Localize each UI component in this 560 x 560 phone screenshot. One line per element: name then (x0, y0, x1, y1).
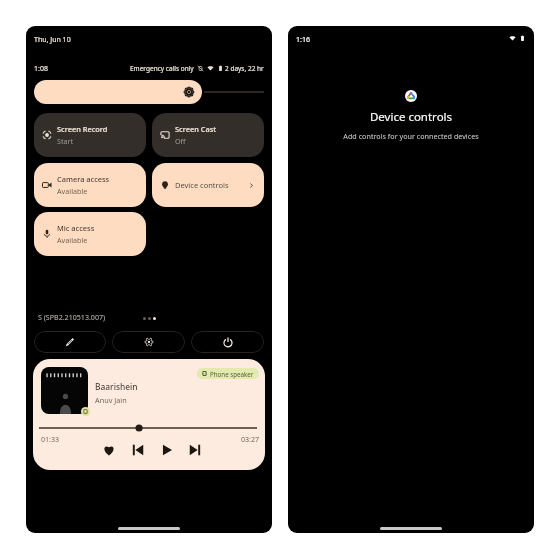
button[interactable]: Phone speaker (197, 368, 259, 379)
staticText: Screen Record (57, 124, 108, 134)
staticText: Phone speaker (210, 370, 254, 378)
staticText: 01:33 (41, 434, 60, 444)
button[interactable]: Settings (112, 331, 185, 353)
button[interactable]: Screen Cast (152, 113, 264, 157)
button[interactable]: Edit (34, 331, 106, 353)
button[interactable]: Next (187, 442, 203, 458)
button[interactable]: Power (191, 331, 264, 353)
button[interactable]: Device controls (152, 163, 264, 207)
button[interactable]: Mic access (34, 212, 146, 256)
staticText: Add controls for your connected devices (288, 131, 534, 141)
staticText: 03:27 (241, 434, 260, 444)
staticText: Off (175, 136, 186, 146)
staticText: Start (57, 136, 74, 146)
staticText: Device controls (175, 180, 229, 190)
staticText: 2 days, 22 hr (225, 64, 264, 73)
staticText: 1:16 (296, 35, 310, 45)
button[interactable]: Previous (130, 442, 146, 458)
staticText: Emergency calls only (130, 64, 194, 73)
staticText: Available (57, 235, 88, 245)
staticText: Mic access (57, 223, 95, 233)
button[interactable]: Favorite (101, 442, 117, 458)
button[interactable]: Play (159, 442, 175, 458)
button[interactable] (34, 80, 202, 104)
staticText: Baarishein (95, 381, 138, 392)
staticText: Device controls (288, 109, 534, 125)
button[interactable]: Screen Record (34, 113, 146, 157)
staticText: Anuv Jain (95, 395, 127, 405)
staticText: 1:08 (34, 64, 48, 74)
staticText: Available (57, 186, 88, 196)
staticText: Camera access (57, 174, 110, 184)
staticText: Thu, Jun 10 (34, 35, 71, 45)
button[interactable]: Camera access (34, 163, 146, 207)
staticText: S (SPB2.210513.007) (38, 312, 106, 322)
staticText: Screen Cast (175, 124, 217, 134)
